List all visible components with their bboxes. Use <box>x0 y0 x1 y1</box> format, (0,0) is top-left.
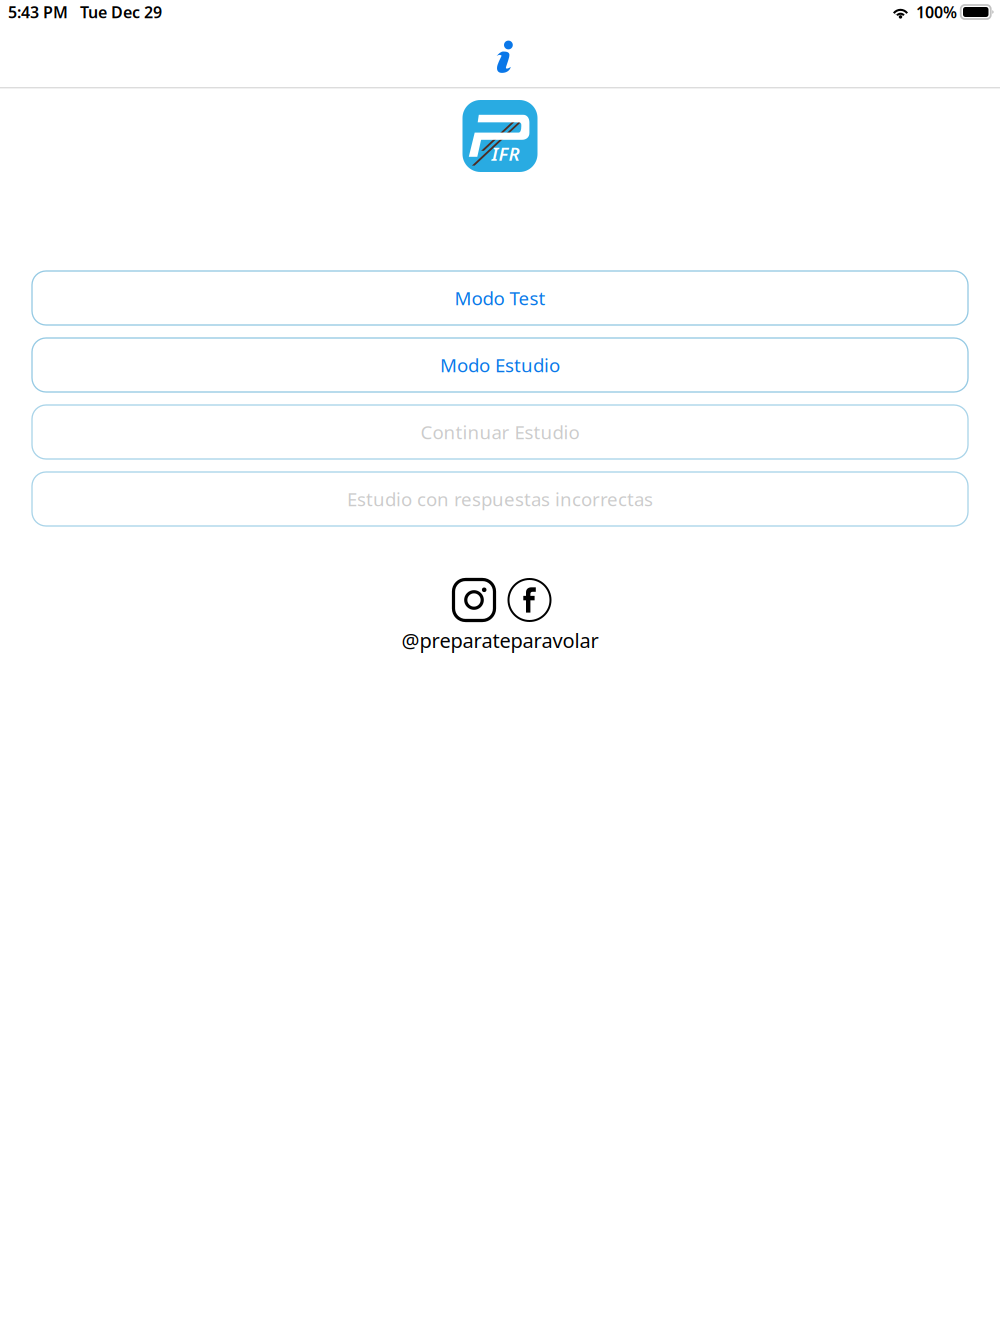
button[interactable]: Information <box>472 27 528 83</box>
staticText: 5:43 PM <box>8 1 68 23</box>
staticText: @preparateparavolar <box>401 627 598 654</box>
staticText: Continuar Estudio <box>420 420 579 444</box>
button[interactable]: Modo Estudio <box>32 338 968 392</box>
staticText: Modo Estudio <box>440 353 560 377</box>
button[interactable]: Modo Test <box>32 271 968 325</box>
button[interactable]: Instagram <box>453 579 494 620</box>
staticText: Estudio con respuestas incorrectas <box>347 487 653 511</box>
staticText: 100% <box>916 1 957 23</box>
staticText: IFR <box>491 141 519 166</box>
button[interactable]: Facebook <box>508 579 550 621</box>
button[interactable]: Estudio con respuestas incorrectas <box>32 472 968 526</box>
staticText: Modo Test <box>454 286 545 310</box>
staticText: Tue Dec 29 <box>80 1 162 23</box>
button[interactable]: Continuar Estudio <box>32 405 968 459</box>
